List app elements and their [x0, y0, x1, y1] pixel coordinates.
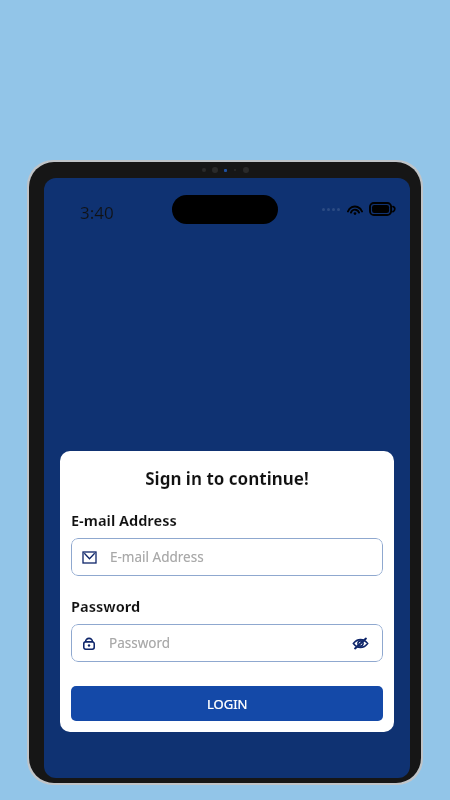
staticText: E-mail Address [71, 510, 177, 530]
staticText: E-mail Address [110, 548, 371, 566]
button[interactable]: LOGIN [71, 686, 383, 721]
button[interactable]: E-mail Address [71, 538, 383, 576]
staticText: 3:40 [80, 201, 114, 224]
staticText: Password [71, 596, 141, 616]
staticText: Password [109, 634, 349, 652]
staticText: Sign in to continue! [71, 467, 383, 490]
button[interactable]: Password [71, 624, 383, 662]
button[interactable]: Show password [349, 632, 371, 654]
staticText: LOGIN [207, 695, 248, 713]
